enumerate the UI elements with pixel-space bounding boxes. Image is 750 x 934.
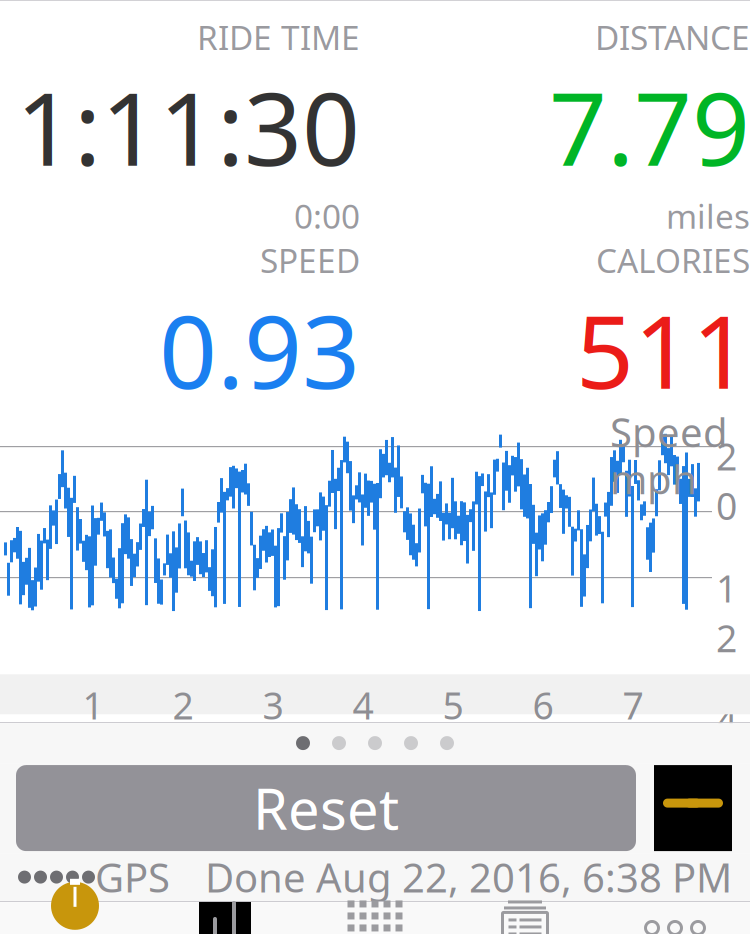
staticText: Done Aug 22, 2016, 6:38 PM bbox=[205, 850, 732, 904]
staticText: 4 bbox=[352, 680, 373, 730]
staticText: 1 bbox=[82, 680, 103, 730]
staticText: SPEED bbox=[260, 238, 360, 282]
staticText: 5 bbox=[442, 680, 463, 730]
staticText: Speed bbox=[610, 405, 728, 458]
staticText: 3 bbox=[262, 680, 283, 730]
staticText: 12 bbox=[716, 563, 737, 662]
staticText: 2 bbox=[172, 680, 193, 730]
staticText: 7 bbox=[622, 680, 643, 730]
staticText: 1:11:30 bbox=[16, 59, 360, 194]
staticText: 4 bbox=[716, 695, 737, 745]
staticText: miles bbox=[666, 194, 750, 238]
button[interactable]: More bbox=[600, 902, 750, 934]
staticText: 511 bbox=[576, 282, 750, 417]
staticText: 0.93 bbox=[159, 282, 360, 417]
button[interactable]: Calendar bbox=[300, 902, 450, 934]
button[interactable]: Reset bbox=[16, 765, 636, 851]
staticText: 7.79 bbox=[549, 59, 750, 194]
staticText: 6 bbox=[532, 680, 553, 730]
staticText: DISTANCE bbox=[595, 15, 750, 59]
staticText: 0:00 bbox=[294, 194, 360, 238]
button[interactable]: Expand bbox=[654, 765, 732, 851]
staticText: mph bbox=[610, 452, 697, 505]
staticText: GPS bbox=[95, 850, 170, 904]
button[interactable]: Map bbox=[150, 902, 300, 934]
staticText: Reset bbox=[253, 771, 399, 845]
staticText: CALORIES bbox=[596, 238, 750, 282]
staticText: 20 bbox=[716, 431, 737, 530]
button[interactable]: History bbox=[450, 902, 600, 934]
staticText: RIDE TIME bbox=[197, 15, 360, 59]
staticText: mph bbox=[287, 417, 360, 461]
button[interactable]: Stopwatch bbox=[0, 902, 150, 934]
